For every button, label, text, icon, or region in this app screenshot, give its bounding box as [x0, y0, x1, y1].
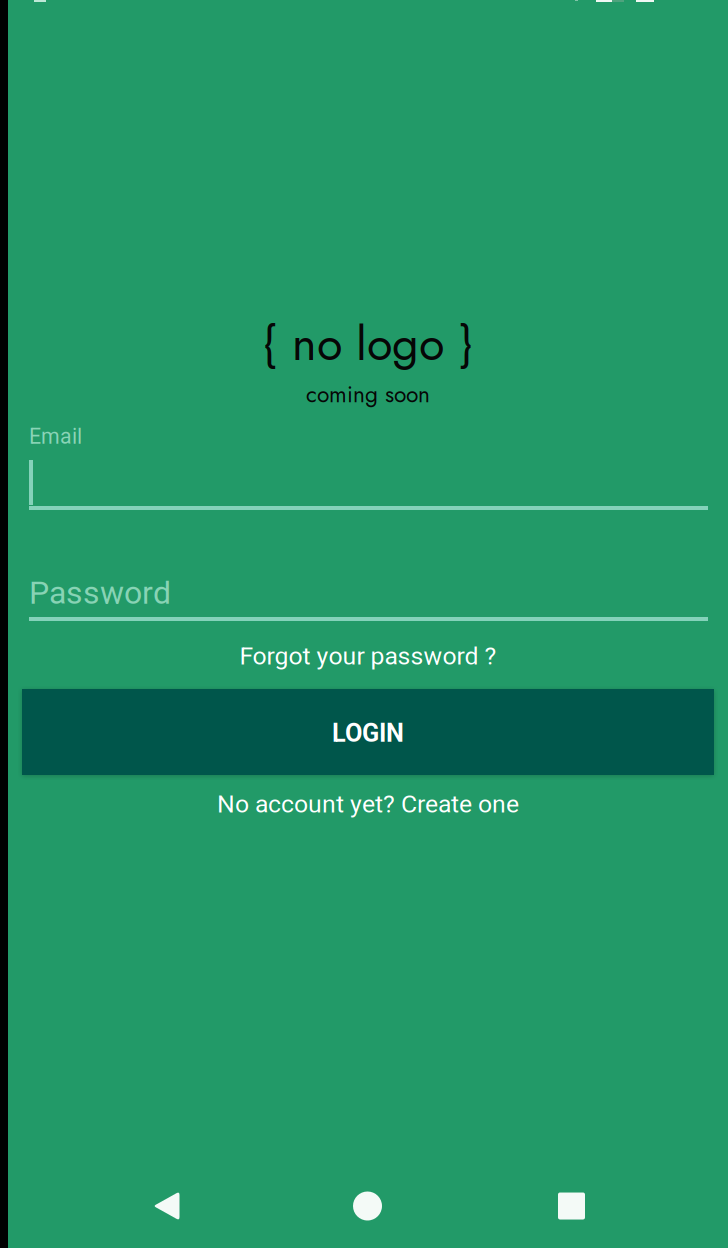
- button[interactable]: No account yet? Create one: [8, 787, 728, 821]
- staticText: coming soon: [306, 378, 430, 411]
- staticText: Forgot your password ?: [239, 641, 496, 671]
- staticText: No account yet? Create one: [217, 789, 519, 819]
- staticText: Password: [29, 574, 171, 611]
- button[interactable]: Recent apps: [484, 1167, 659, 1245]
- button[interactable]: LOGIN: [22, 689, 714, 775]
- staticText: Email: [29, 424, 82, 449]
- staticText: { no logo }: [263, 310, 473, 377]
- button[interactable]: Back: [79, 1167, 254, 1245]
- staticText: LOGIN: [332, 718, 404, 748]
- button[interactable]: Home: [280, 1167, 455, 1245]
- button[interactable]: Forgot your password ?: [8, 639, 728, 673]
